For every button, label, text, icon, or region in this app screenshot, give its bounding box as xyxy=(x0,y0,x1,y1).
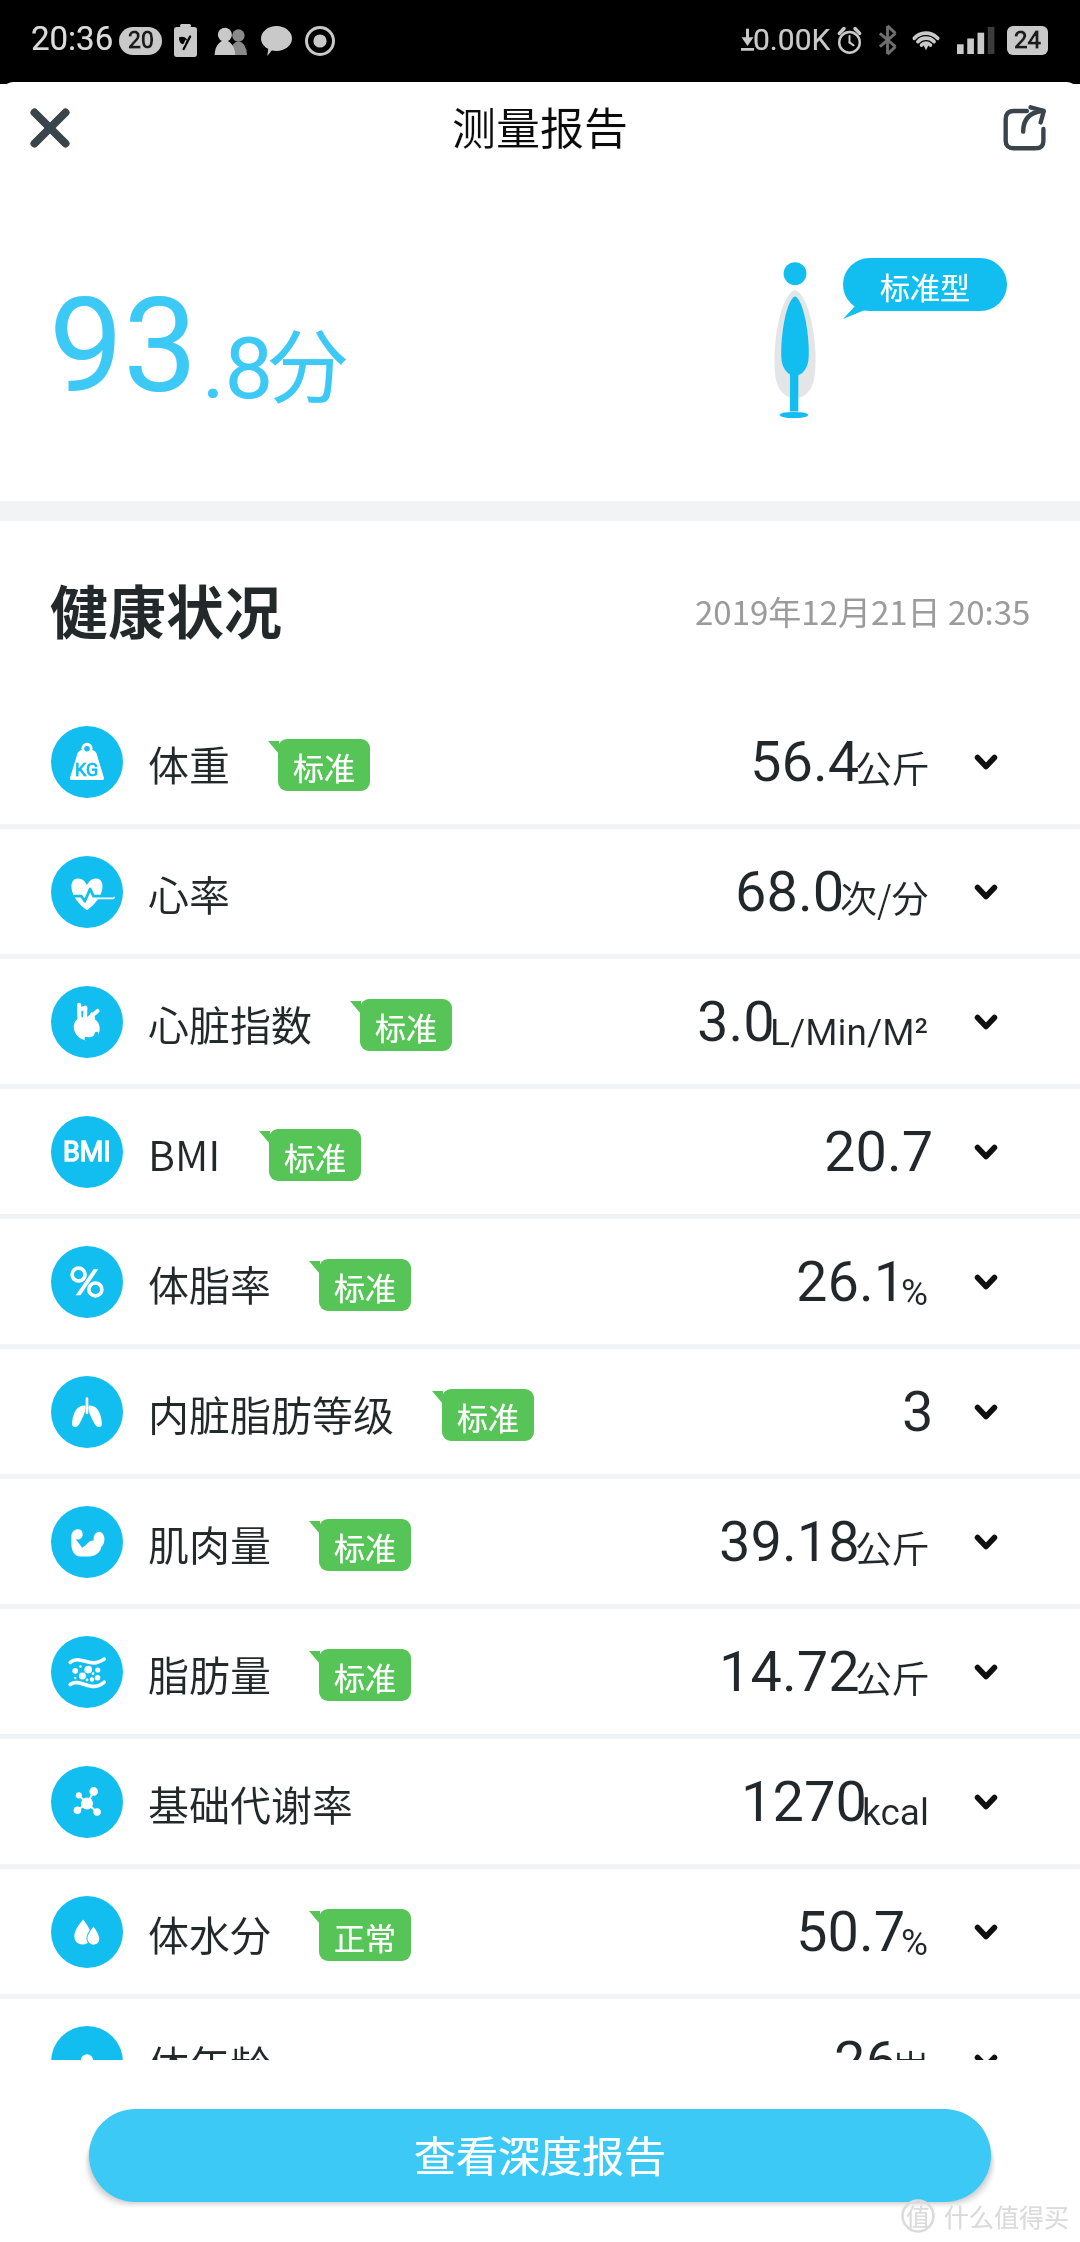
button[interactable]: 体年龄 xyxy=(0,1999,1080,2124)
staticText: 公斤 xyxy=(855,1650,929,1704)
staticText: 93 xyxy=(49,269,198,424)
button[interactable]: 体水分 xyxy=(0,1869,1080,1994)
staticText: 公斤 xyxy=(855,1520,929,1574)
staticText: 标准 xyxy=(334,1654,396,1699)
button[interactable]: 心率 xyxy=(0,829,1080,954)
staticText: 心率 xyxy=(148,863,230,922)
staticText: 心脏指数 xyxy=(148,993,312,1052)
staticText: 查看深度报告 xyxy=(414,2123,667,2184)
staticText: 20 xyxy=(128,27,154,54)
staticText: 26.1 xyxy=(796,1249,906,1315)
staticText: kcal xyxy=(862,1791,929,1834)
button[interactable]: 基础代谢率 xyxy=(0,1739,1080,1864)
staticText: 体水分 xyxy=(148,1903,271,1962)
staticText: 内脏脂肪等级 xyxy=(148,1383,394,1442)
staticText: 标准 xyxy=(334,1524,396,1569)
staticText: 公斤 xyxy=(855,740,929,794)
staticText: 20.7 xyxy=(824,1119,934,1185)
staticText: 肌肉量 xyxy=(148,1513,271,1572)
staticText: 次/分 xyxy=(840,870,929,924)
button[interactable]: 内脏脂肪等级 xyxy=(0,1349,1080,1474)
staticText: 2019年12月21日 20:35 xyxy=(695,587,1031,635)
staticText: 标准 xyxy=(284,1134,346,1179)
staticText: 什么值得买 xyxy=(944,2198,1070,2234)
staticText: 基础代谢率 xyxy=(148,1773,353,1832)
staticText: 正常 xyxy=(334,1914,396,1959)
staticText: KG xyxy=(75,759,99,780)
button[interactable]: Close xyxy=(8,86,92,170)
button[interactable]: 脂肪量 xyxy=(0,1609,1080,1734)
staticText: 值 xyxy=(906,2198,930,2232)
staticText: 体重 xyxy=(148,733,230,792)
staticText: 测量报告 xyxy=(452,94,628,158)
staticText: % xyxy=(901,1271,929,1314)
staticText: 体脂率 xyxy=(148,1253,271,1312)
staticText: 标准 xyxy=(457,1394,519,1439)
staticText: .8 xyxy=(202,318,274,419)
staticText: 脂肪量 xyxy=(148,1643,271,1702)
staticText: % xyxy=(901,1921,929,1964)
button[interactable]: 肌肉量 xyxy=(0,1479,1080,1604)
staticText: 体年龄 xyxy=(148,2033,271,2092)
staticText: L/Min/M² xyxy=(770,1011,929,1054)
staticText: 56.4 xyxy=(750,729,860,795)
staticText: 标准型 xyxy=(880,264,970,307)
button[interactable]: 查看深度报告 xyxy=(89,2109,991,2202)
staticText: 1270 xyxy=(741,1769,867,1835)
staticText: 健康状况 xyxy=(50,567,283,651)
button[interactable]: BMI xyxy=(0,1089,1080,1214)
staticText: 68.0 xyxy=(735,859,845,925)
staticText: 50.7 xyxy=(796,1899,906,1965)
staticText: BMI xyxy=(63,1136,111,1168)
staticText: 标准 xyxy=(293,744,355,789)
button[interactable]: 体脂率 xyxy=(0,1219,1080,1344)
staticText: 26 xyxy=(834,2029,897,2095)
staticText: 标准 xyxy=(334,1264,396,1309)
button[interactable]: KG xyxy=(0,699,1080,824)
staticText: 岁 xyxy=(892,2040,929,2094)
staticText: 39.18 xyxy=(719,1509,860,1575)
button[interactable]: Share xyxy=(983,86,1067,170)
staticText: 分 xyxy=(268,303,348,419)
staticText: 20:36 xyxy=(31,19,114,58)
staticText: 0.00K xyxy=(753,22,831,57)
staticText: 24 xyxy=(1014,26,1041,54)
staticText: BMI xyxy=(148,1123,221,1182)
staticText: 标准 xyxy=(375,1004,437,1049)
staticText: 3.0 xyxy=(697,989,775,1055)
staticText: 14.72 xyxy=(719,1639,860,1705)
staticText: 3 xyxy=(902,1379,934,1445)
button[interactable]: 心脏指数 xyxy=(0,959,1080,1084)
